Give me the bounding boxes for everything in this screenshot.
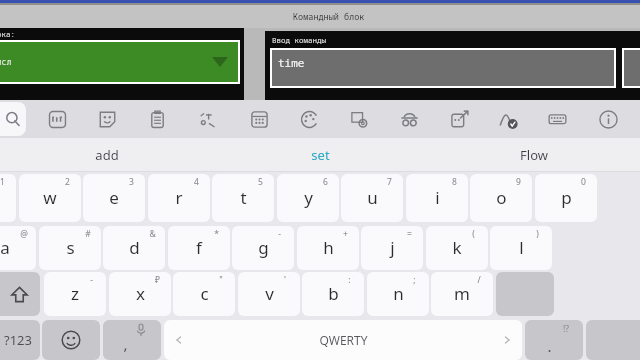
button[interactable]: b <box>302 272 364 316</box>
button[interactable]: set <box>214 138 427 172</box>
button[interactable]: p <box>535 174 597 222</box>
button[interactable]: Flow <box>427 138 640 172</box>
button[interactable]: d <box>103 226 165 270</box>
button[interactable]: Share screenshot <box>441 101 477 137</box>
staticText: ' <box>284 274 286 286</box>
staticText: w <box>43 186 57 209</box>
staticText: " <box>219 274 223 286</box>
button[interactable]: q <box>0 174 16 222</box>
button[interactable]: нисл <box>0 42 238 82</box>
staticText: 1 <box>0 176 5 188</box>
staticText: b <box>328 282 339 305</box>
staticText: x <box>136 282 145 305</box>
staticText: m <box>454 282 470 305</box>
button[interactable]: Handwriting <box>490 101 526 137</box>
button[interactable]: Shift <box>0 272 40 316</box>
button[interactable]: u <box>341 174 403 222</box>
button[interactable]: Comma, voice input <box>103 320 161 360</box>
staticText: h <box>323 236 334 259</box>
button[interactable]: n <box>367 272 429 316</box>
button[interactable]: . <box>525 320 583 360</box>
staticText: QWERTY <box>319 332 368 348</box>
staticText: s <box>66 236 75 259</box>
staticText: l <box>519 236 524 259</box>
button[interactable]: s <box>39 226 101 270</box>
button[interactable]: Keyboard resize <box>539 101 575 137</box>
staticText: Командный блок <box>293 11 365 23</box>
staticText: 9 <box>516 176 521 188</box>
staticText: 3 <box>129 176 134 188</box>
button[interactable]: i <box>406 174 468 222</box>
button[interactable]: Space <box>164 320 522 360</box>
staticText: e <box>109 186 119 209</box>
staticText: y <box>304 186 313 209</box>
button[interactable]: Search <box>0 102 26 136</box>
staticText: , <box>123 334 128 354</box>
staticText: - <box>90 274 93 286</box>
staticText: !? <box>563 323 569 335</box>
staticText: o <box>496 186 507 209</box>
button[interactable]: r <box>148 174 210 222</box>
staticText: time <box>278 55 305 70</box>
button[interactable]: m <box>431 272 493 316</box>
button[interactable]: ?123 <box>0 320 40 360</box>
button[interactable]: v <box>238 272 300 316</box>
staticText: 4 <box>194 176 199 188</box>
button[interactable]: x <box>109 272 171 316</box>
staticText: 0 <box>581 176 586 188</box>
staticText: # <box>85 228 91 240</box>
staticText: c <box>200 282 209 305</box>
button[interactable]: Info <box>590 101 626 137</box>
button[interactable]: Backspace <box>496 272 554 316</box>
staticText: f <box>196 236 202 259</box>
staticText: a <box>0 236 10 259</box>
button[interactable]: Themes <box>291 101 327 137</box>
button[interactable]: o <box>470 174 532 222</box>
button[interactable]: h <box>297 226 359 270</box>
button[interactable]: e <box>83 174 145 222</box>
staticText: . <box>547 336 552 356</box>
button[interactable]: z <box>44 272 106 316</box>
staticText: d <box>129 236 140 259</box>
staticText: + <box>343 228 348 240</box>
button[interactable]: time <box>272 50 614 86</box>
staticText: k <box>452 236 462 259</box>
staticText: Ввод команды <box>272 35 326 45</box>
staticText: j <box>390 236 395 259</box>
button[interactable]: t <box>212 174 274 222</box>
button[interactable]: Settings <box>341 101 377 137</box>
button[interactable]: a <box>0 226 36 270</box>
button[interactable]: j <box>361 226 423 270</box>
button[interactable]: Clipboard <box>139 101 175 137</box>
staticText: p <box>561 186 572 209</box>
staticText: t <box>240 186 247 209</box>
staticText: z <box>71 282 79 305</box>
staticText: @ <box>20 228 28 240</box>
button[interactable]: Translate <box>189 101 225 137</box>
button[interactable]: Emoji <box>42 320 100 360</box>
button[interactable]: Emoji keypad <box>241 101 277 137</box>
staticText: * <box>214 228 219 240</box>
button[interactable]: Sticker <box>89 101 125 137</box>
staticText: блока: <box>0 29 15 39</box>
staticText: ( <box>472 228 475 240</box>
staticText: Flow <box>520 146 548 164</box>
staticText: 5 <box>258 176 263 188</box>
staticText: ; <box>413 274 416 286</box>
button[interactable]: Incognito <box>391 101 427 137</box>
button[interactable]: f <box>168 226 230 270</box>
staticText: & <box>149 228 156 240</box>
staticText: r <box>175 186 183 209</box>
button[interactable]: add <box>0 138 214 172</box>
button[interactable]: GIF <box>39 101 75 137</box>
button[interactable]: g <box>232 226 294 270</box>
button[interactable]: c <box>173 272 235 316</box>
button[interactable]: k <box>426 226 488 270</box>
button[interactable]: w <box>19 174 81 222</box>
staticText: нисл <box>0 56 12 67</box>
button[interactable]: y <box>277 174 339 222</box>
button[interactable]: l <box>490 226 552 270</box>
staticText: 7 <box>387 176 392 188</box>
staticText: i <box>435 186 440 209</box>
